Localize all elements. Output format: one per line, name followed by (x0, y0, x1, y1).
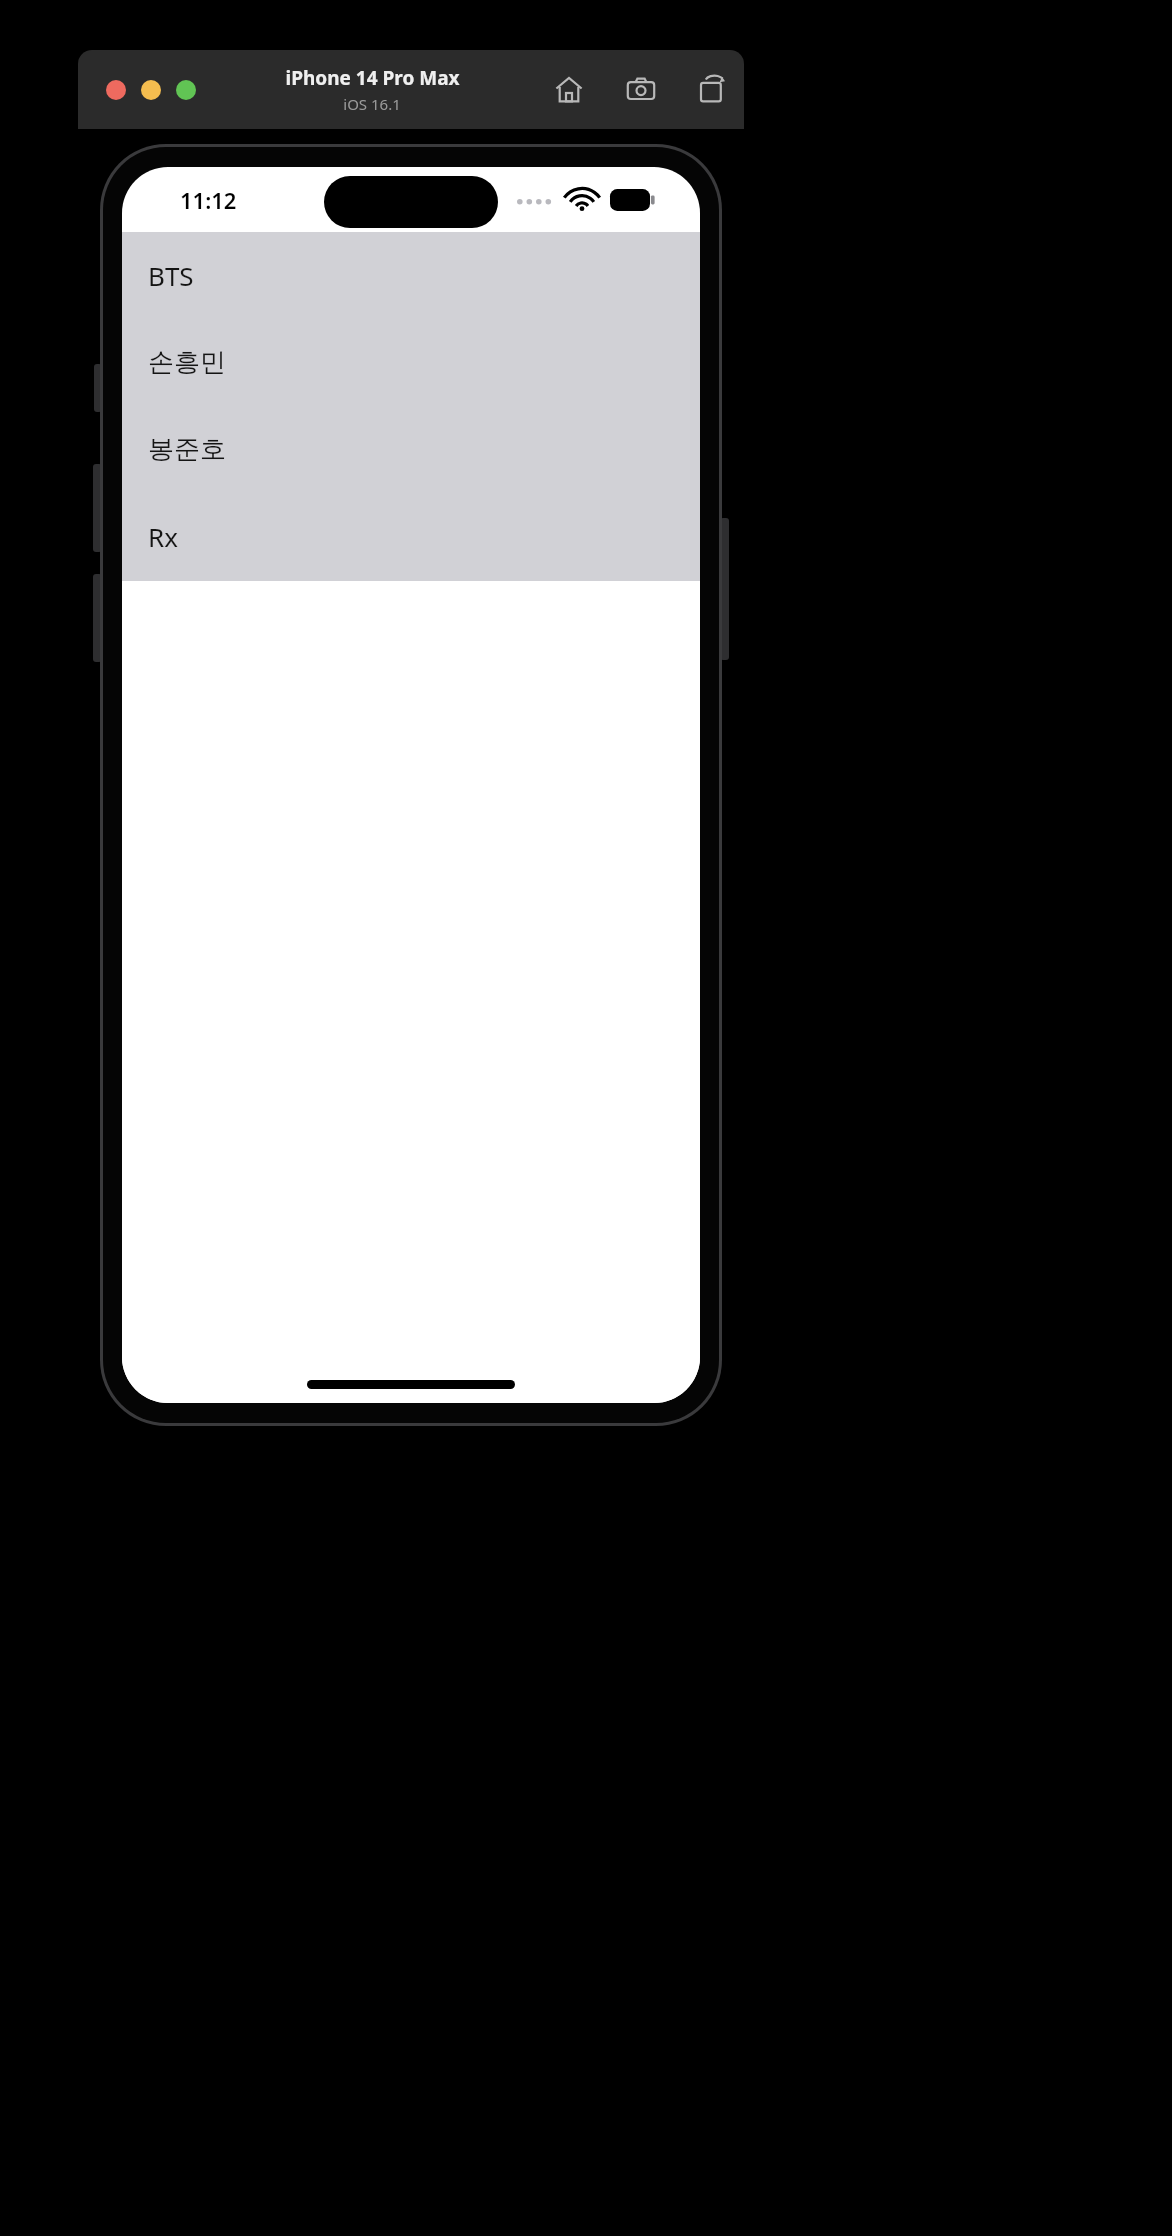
button[interactable]: Rotate (690, 67, 736, 113)
staticText: 봉준호 (148, 433, 226, 466)
staticText: 손흥민 (148, 346, 226, 379)
staticText: Rx (148, 519, 178, 554)
button[interactable]: Screenshot (618, 67, 664, 113)
button[interactable]: 봉준호 (122, 406, 700, 493)
button[interactable]: Minimize (141, 80, 161, 100)
button[interactable]: Home (546, 67, 592, 113)
staticText: iPhone 14 Pro Max (285, 65, 460, 91)
button[interactable]: BTS (122, 232, 700, 319)
staticText: iOS 16.1 (343, 94, 401, 114)
button[interactable]: 손흥민 (122, 319, 700, 406)
staticText: BTS (148, 258, 194, 293)
button[interactable]: Rx (122, 493, 700, 580)
button[interactable]: Close (106, 80, 126, 100)
staticText: 11:12 (180, 185, 237, 215)
button[interactable]: Zoom (176, 80, 196, 100)
